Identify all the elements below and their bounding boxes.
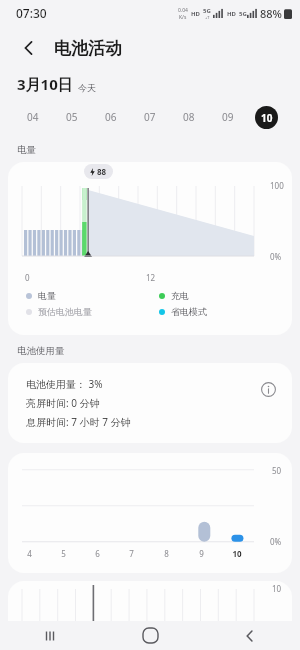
button[interactable]: 10	[8, 581, 292, 621]
staticText: 04	[27, 110, 39, 124]
staticText: 省电模式	[171, 306, 207, 317]
staticText: 88	[97, 166, 107, 177]
staticText: 10	[232, 548, 242, 559]
staticText: 100	[270, 180, 284, 191]
staticText: 10	[261, 111, 273, 125]
button[interactable]: 电池使用量： 3%	[8, 363, 292, 443]
staticText: 充电	[171, 290, 189, 301]
staticText: 4	[27, 548, 32, 559]
button[interactable]: 06	[91, 100, 130, 134]
button[interactable]: 09	[208, 100, 247, 134]
button[interactable]: 10	[247, 100, 286, 134]
staticText: K/s	[179, 14, 187, 21]
staticText: 0%	[270, 536, 282, 547]
button[interactable]: Info	[256, 377, 280, 401]
staticText: 5	[61, 548, 66, 559]
staticText: 06	[105, 110, 117, 124]
staticText: 50	[272, 465, 282, 476]
staticText: 7	[129, 548, 134, 559]
button[interactable]: Back	[200, 621, 300, 650]
staticText: HD	[191, 10, 200, 18]
staticText: 9	[199, 548, 204, 559]
staticText: 12	[146, 272, 156, 283]
staticText: 07	[144, 110, 156, 124]
button[interactable]: 05	[52, 100, 91, 134]
staticText: 电池活动	[54, 38, 122, 59]
staticText: 电量	[38, 290, 56, 301]
staticText: 05	[66, 110, 78, 124]
staticText: 息屏时间: 7 小时 7 分钟	[26, 415, 131, 429]
staticText: 0%	[270, 251, 282, 262]
staticText: 亮屏时间: 0 分钟	[26, 396, 100, 410]
staticText: 6	[95, 548, 100, 559]
button[interactable]: Recents	[0, 621, 100, 650]
button[interactable]: 88	[8, 162, 292, 335]
staticText: 8	[164, 548, 169, 559]
button[interactable]: Home	[100, 621, 200, 650]
staticText: 10	[272, 583, 282, 594]
button[interactable]: 04	[14, 100, 52, 134]
staticText: 0	[25, 272, 30, 283]
staticText: HD	[227, 10, 236, 18]
staticText: 08	[183, 110, 195, 124]
staticText: 5G	[239, 10, 247, 18]
button[interactable]: Back	[14, 33, 44, 63]
staticText: 07:30	[16, 5, 47, 21]
button[interactable]: 08	[169, 100, 208, 134]
staticText: 电池使用量： 3%	[26, 377, 103, 391]
staticText: 今天	[78, 82, 96, 93]
staticText: +T	[205, 15, 210, 20]
button[interactable]: 07	[130, 100, 169, 134]
staticText: 电池使用量	[17, 345, 65, 357]
staticText: 5G	[203, 7, 211, 15]
staticText: 3月10日	[17, 74, 73, 94]
staticText: 88%	[260, 6, 282, 21]
staticText: 预估电池电量	[38, 306, 92, 317]
staticText: 电量	[17, 144, 36, 156]
staticText: 09	[222, 110, 234, 124]
button[interactable]: 50	[8, 453, 292, 573]
staticText: 0.04	[178, 7, 188, 14]
